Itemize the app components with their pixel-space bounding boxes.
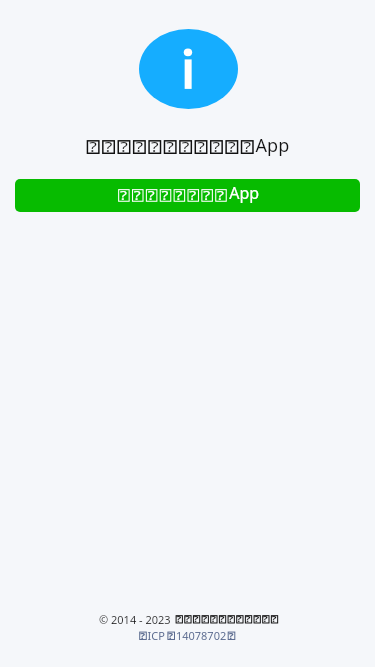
other: App information — [139, 29, 238, 109]
button[interactable] — [15, 179, 360, 212]
button[interactable]: ICP licence number — [138, 628, 237, 643]
